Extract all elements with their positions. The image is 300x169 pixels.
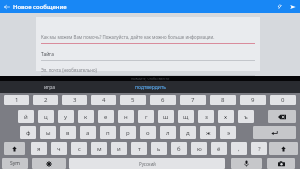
button[interactable]: Back <box>0 0 13 13</box>
button[interactable]: Русский <box>69 158 225 169</box>
staticText: и <box>117 145 121 153</box>
staticText: л <box>166 129 170 137</box>
button[interactable]: Sym <box>2 158 28 169</box>
staticText: Тайга <box>41 51 54 58</box>
staticText: 5 <box>131 96 135 104</box>
button[interactable]: ж <box>200 126 216 139</box>
button[interactable]: 0 <box>270 95 296 105</box>
staticText: 0 <box>281 96 285 104</box>
staticText: ё <box>217 145 221 153</box>
button[interactable]: о <box>140 126 156 139</box>
button[interactable]: Send <box>286 0 299 13</box>
staticText: р <box>126 129 130 137</box>
staticText: е <box>104 113 108 121</box>
button[interactable]: е <box>98 110 114 123</box>
button[interactable]: Backspace <box>268 110 296 123</box>
button[interactable]: 6 <box>150 95 176 105</box>
button[interactable]: у <box>58 110 74 123</box>
button[interactable]: Shift <box>4 142 25 155</box>
button[interactable]: а <box>80 126 96 139</box>
button[interactable]: игра <box>0 81 100 93</box>
button[interactable]: Shift <box>269 142 298 155</box>
staticText: х <box>224 113 228 121</box>
button[interactable]: з <box>198 110 214 123</box>
button[interactable]: ь <box>151 142 167 155</box>
button[interactable]: к <box>78 110 94 123</box>
button[interactable]: д <box>180 126 196 139</box>
staticText: нажмите, чтобы ввести <box>131 76 170 81</box>
staticText: а <box>86 129 90 137</box>
button[interactable]: 8 <box>210 95 236 105</box>
button[interactable]: б <box>171 142 187 155</box>
staticText: ф <box>26 129 31 137</box>
staticText: ь <box>157 145 161 153</box>
staticText: 9 <box>251 96 255 104</box>
button[interactable]: ф <box>20 126 36 139</box>
button[interactable]: , <box>231 142 247 155</box>
button[interactable]: 7 <box>180 95 206 105</box>
button[interactable]: подтвердить <box>100 81 200 93</box>
button[interactable]: 5 <box>120 95 146 105</box>
button[interactable]: щ <box>178 110 194 123</box>
staticText: э <box>227 129 230 137</box>
button[interactable]: ч <box>51 142 67 155</box>
staticText: 4 <box>102 96 106 104</box>
staticText: ? <box>258 145 261 153</box>
button[interactable]: Emoji <box>32 158 66 169</box>
button[interactable]: Camera <box>267 158 295 169</box>
button[interactable]: п <box>100 126 116 139</box>
button[interactable]: й <box>18 110 34 123</box>
button[interactable]: 3 <box>62 95 87 105</box>
button[interactable]: ц <box>38 110 54 123</box>
staticText: й <box>24 113 28 121</box>
staticText: ж <box>206 129 211 137</box>
staticText: н <box>124 113 128 121</box>
staticText: ч <box>57 145 61 153</box>
staticText: б <box>177 145 181 153</box>
staticText: 3 <box>73 96 77 104</box>
staticText: подтвердить <box>135 84 166 91</box>
button[interactable]: э <box>220 126 236 139</box>
staticText: Новое сообщение <box>13 3 67 11</box>
button[interactable]: г <box>138 110 154 123</box>
staticText: я <box>37 145 41 153</box>
button[interactable]: ё <box>211 142 227 155</box>
button[interactable]: х <box>218 110 234 123</box>
button[interactable]: 9 <box>240 95 266 105</box>
staticText: ш <box>163 113 169 121</box>
button[interactable]: ? <box>251 142 267 155</box>
staticText: 1 <box>15 96 19 104</box>
staticText: г <box>145 113 148 121</box>
button[interactable]: л <box>160 126 176 139</box>
button[interactable]: н <box>118 110 134 123</box>
button[interactable]: Enter <box>253 126 296 139</box>
button[interactable]: и <box>111 142 127 155</box>
staticText: у <box>64 113 68 121</box>
button[interactable]: м <box>91 142 107 155</box>
button[interactable]: Attach file <box>273 0 286 13</box>
button[interactable]: ы <box>40 126 56 139</box>
staticText: с <box>78 145 81 153</box>
staticText: 7 <box>191 96 195 104</box>
button[interactable]: 4 <box>91 95 116 105</box>
button[interactable]: т <box>131 142 147 155</box>
button[interactable]: ш <box>158 110 174 123</box>
staticText: в <box>66 129 70 137</box>
button[interactable]: в <box>60 126 76 139</box>
staticText: ю <box>197 145 202 153</box>
button[interactable]: ю <box>191 142 207 155</box>
staticText: ы <box>46 129 51 137</box>
button[interactable]: Voice input <box>231 158 262 169</box>
button[interactable]: ъ <box>238 110 254 123</box>
staticText: м <box>97 145 102 153</box>
button[interactable]: с <box>71 142 87 155</box>
button[interactable]: 2 <box>33 95 58 105</box>
button[interactable]: я <box>31 142 47 155</box>
staticText: щ <box>183 113 189 121</box>
button[interactable]: р <box>120 126 136 139</box>
button[interactable]: 1 <box>4 95 29 105</box>
staticText: 6 <box>161 96 165 104</box>
staticText: к <box>84 113 88 121</box>
staticText: 2 <box>44 96 48 104</box>
